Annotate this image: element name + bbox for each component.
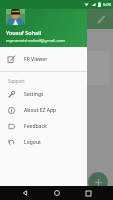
staticText: Support bbox=[8, 78, 25, 84]
button[interactable]: Recents bbox=[81, 186, 95, 200]
staticText: About EZ App bbox=[24, 107, 57, 114]
staticText: Yousuf Sohail bbox=[6, 29, 42, 36]
staticText: FR Viewer bbox=[24, 56, 48, 63]
staticText: Settings bbox=[24, 91, 44, 98]
button[interactable]: Lorem ipsum dolor sit bbox=[4, 51, 109, 85]
staticText: 6:00 bbox=[103, 2, 111, 7]
button[interactable]: About EZ App bbox=[0, 102, 87, 118]
button[interactable]: Add bbox=[88, 172, 108, 192]
staticText: Lorem ipsum dolor sit bbox=[10, 59, 62, 66]
staticText: mynameishsohail@gmail.com bbox=[6, 38, 65, 44]
button[interactable]: Logout bbox=[0, 134, 87, 150]
button[interactable]: Feedback bbox=[0, 118, 87, 134]
button[interactable]: Home bbox=[50, 186, 64, 200]
button[interactable]: Edit bbox=[93, 11, 109, 27]
button[interactable]: FR Viewer bbox=[0, 51, 87, 67]
staticText: Logout bbox=[24, 139, 41, 146]
button[interactable]: Yousuf Sohail bbox=[0, 0, 87, 47]
button[interactable]: Settings bbox=[0, 86, 87, 102]
button[interactable]: Back bbox=[18, 186, 32, 200]
staticText: Feedback bbox=[24, 123, 47, 130]
